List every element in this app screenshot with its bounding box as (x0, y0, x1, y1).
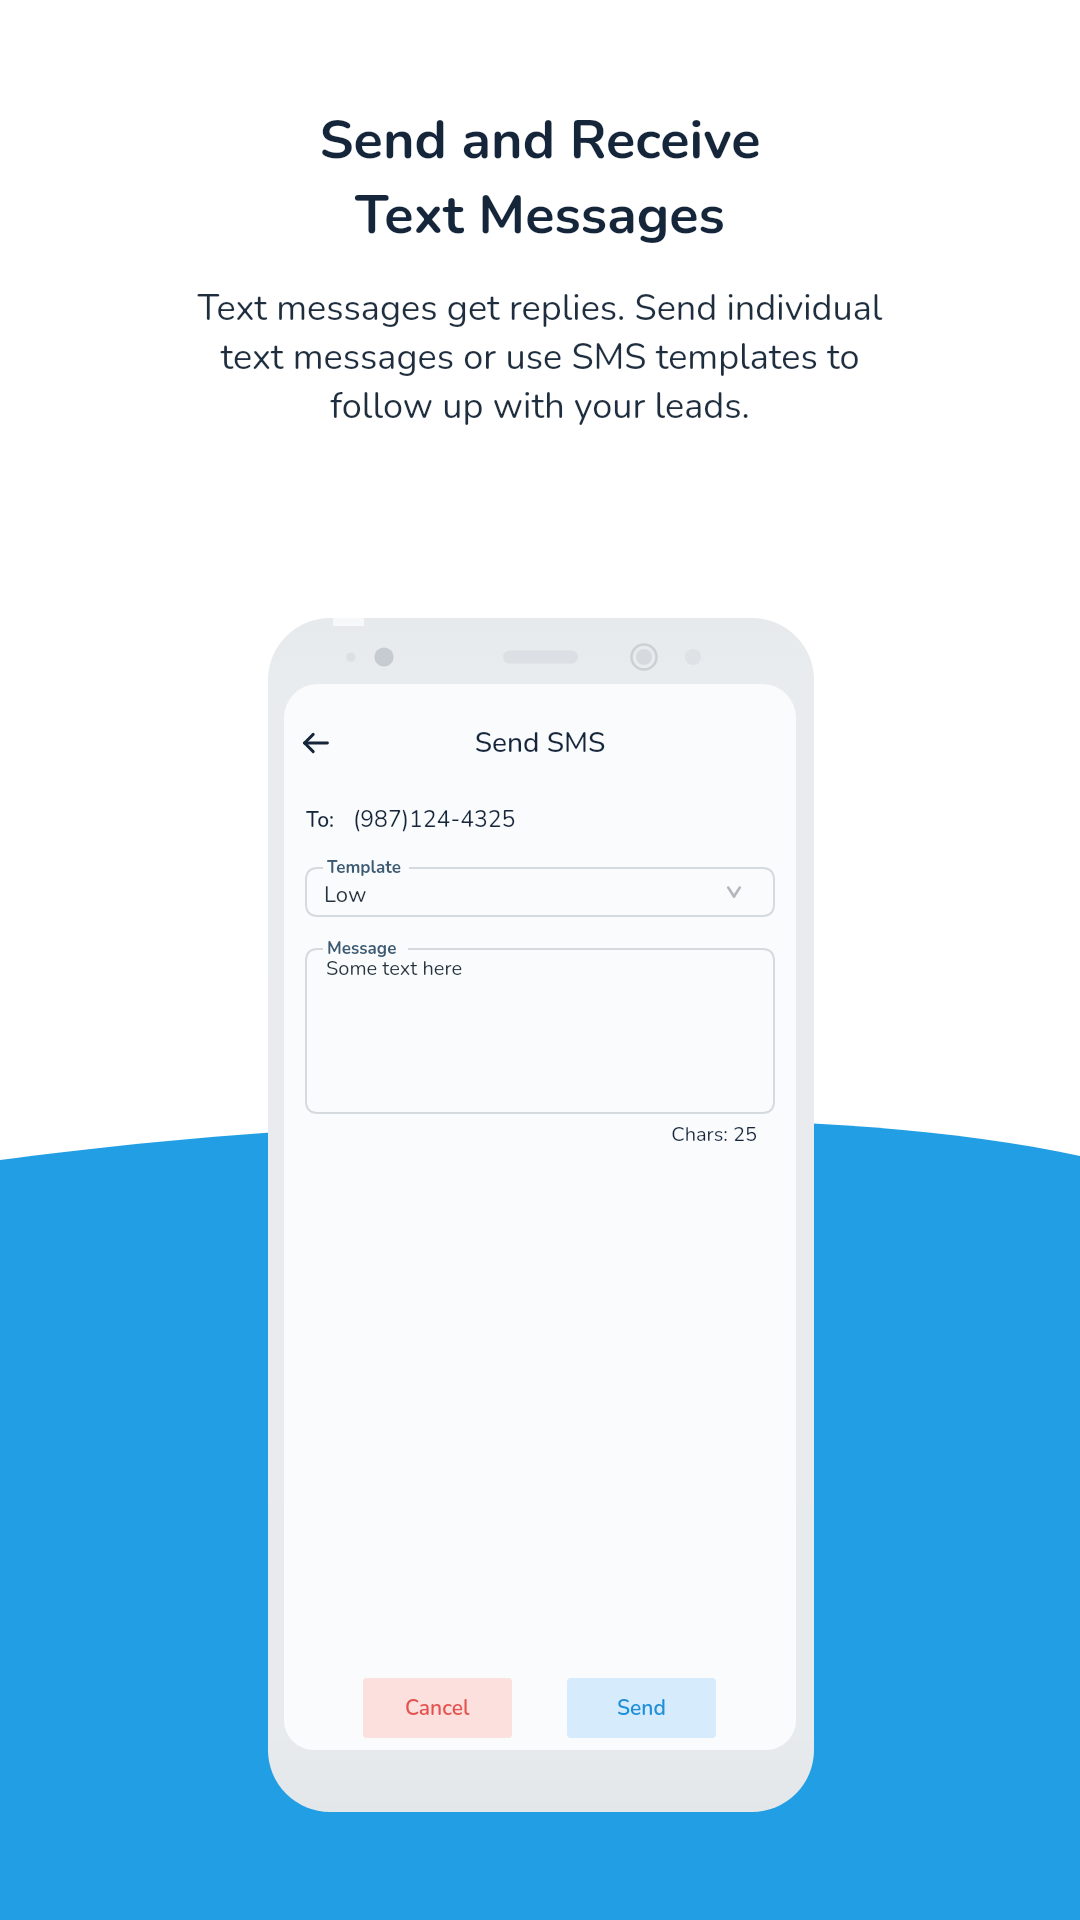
staticText: Send SMS (284, 724, 796, 762)
button[interactable]: Send (567, 1678, 716, 1738)
staticText: Chars: 25 (284, 1121, 757, 1148)
staticText: Send and Receive Text Messages (0, 103, 1080, 252)
staticText: Low (324, 880, 367, 910)
button[interactable]: Back (289, 719, 343, 767)
staticText: Some text here (326, 955, 463, 982)
staticText: Cancel (405, 1694, 470, 1723)
staticText: Message (327, 937, 397, 960)
staticText: Text messages get replies. Send individu… (0, 284, 1080, 431)
staticText: Send (617, 1694, 666, 1723)
staticText: Template (327, 856, 401, 879)
staticText: To: (306, 806, 335, 835)
staticText: (987)124-4325 (353, 804, 516, 835)
button[interactable]: Cancel (363, 1678, 512, 1738)
